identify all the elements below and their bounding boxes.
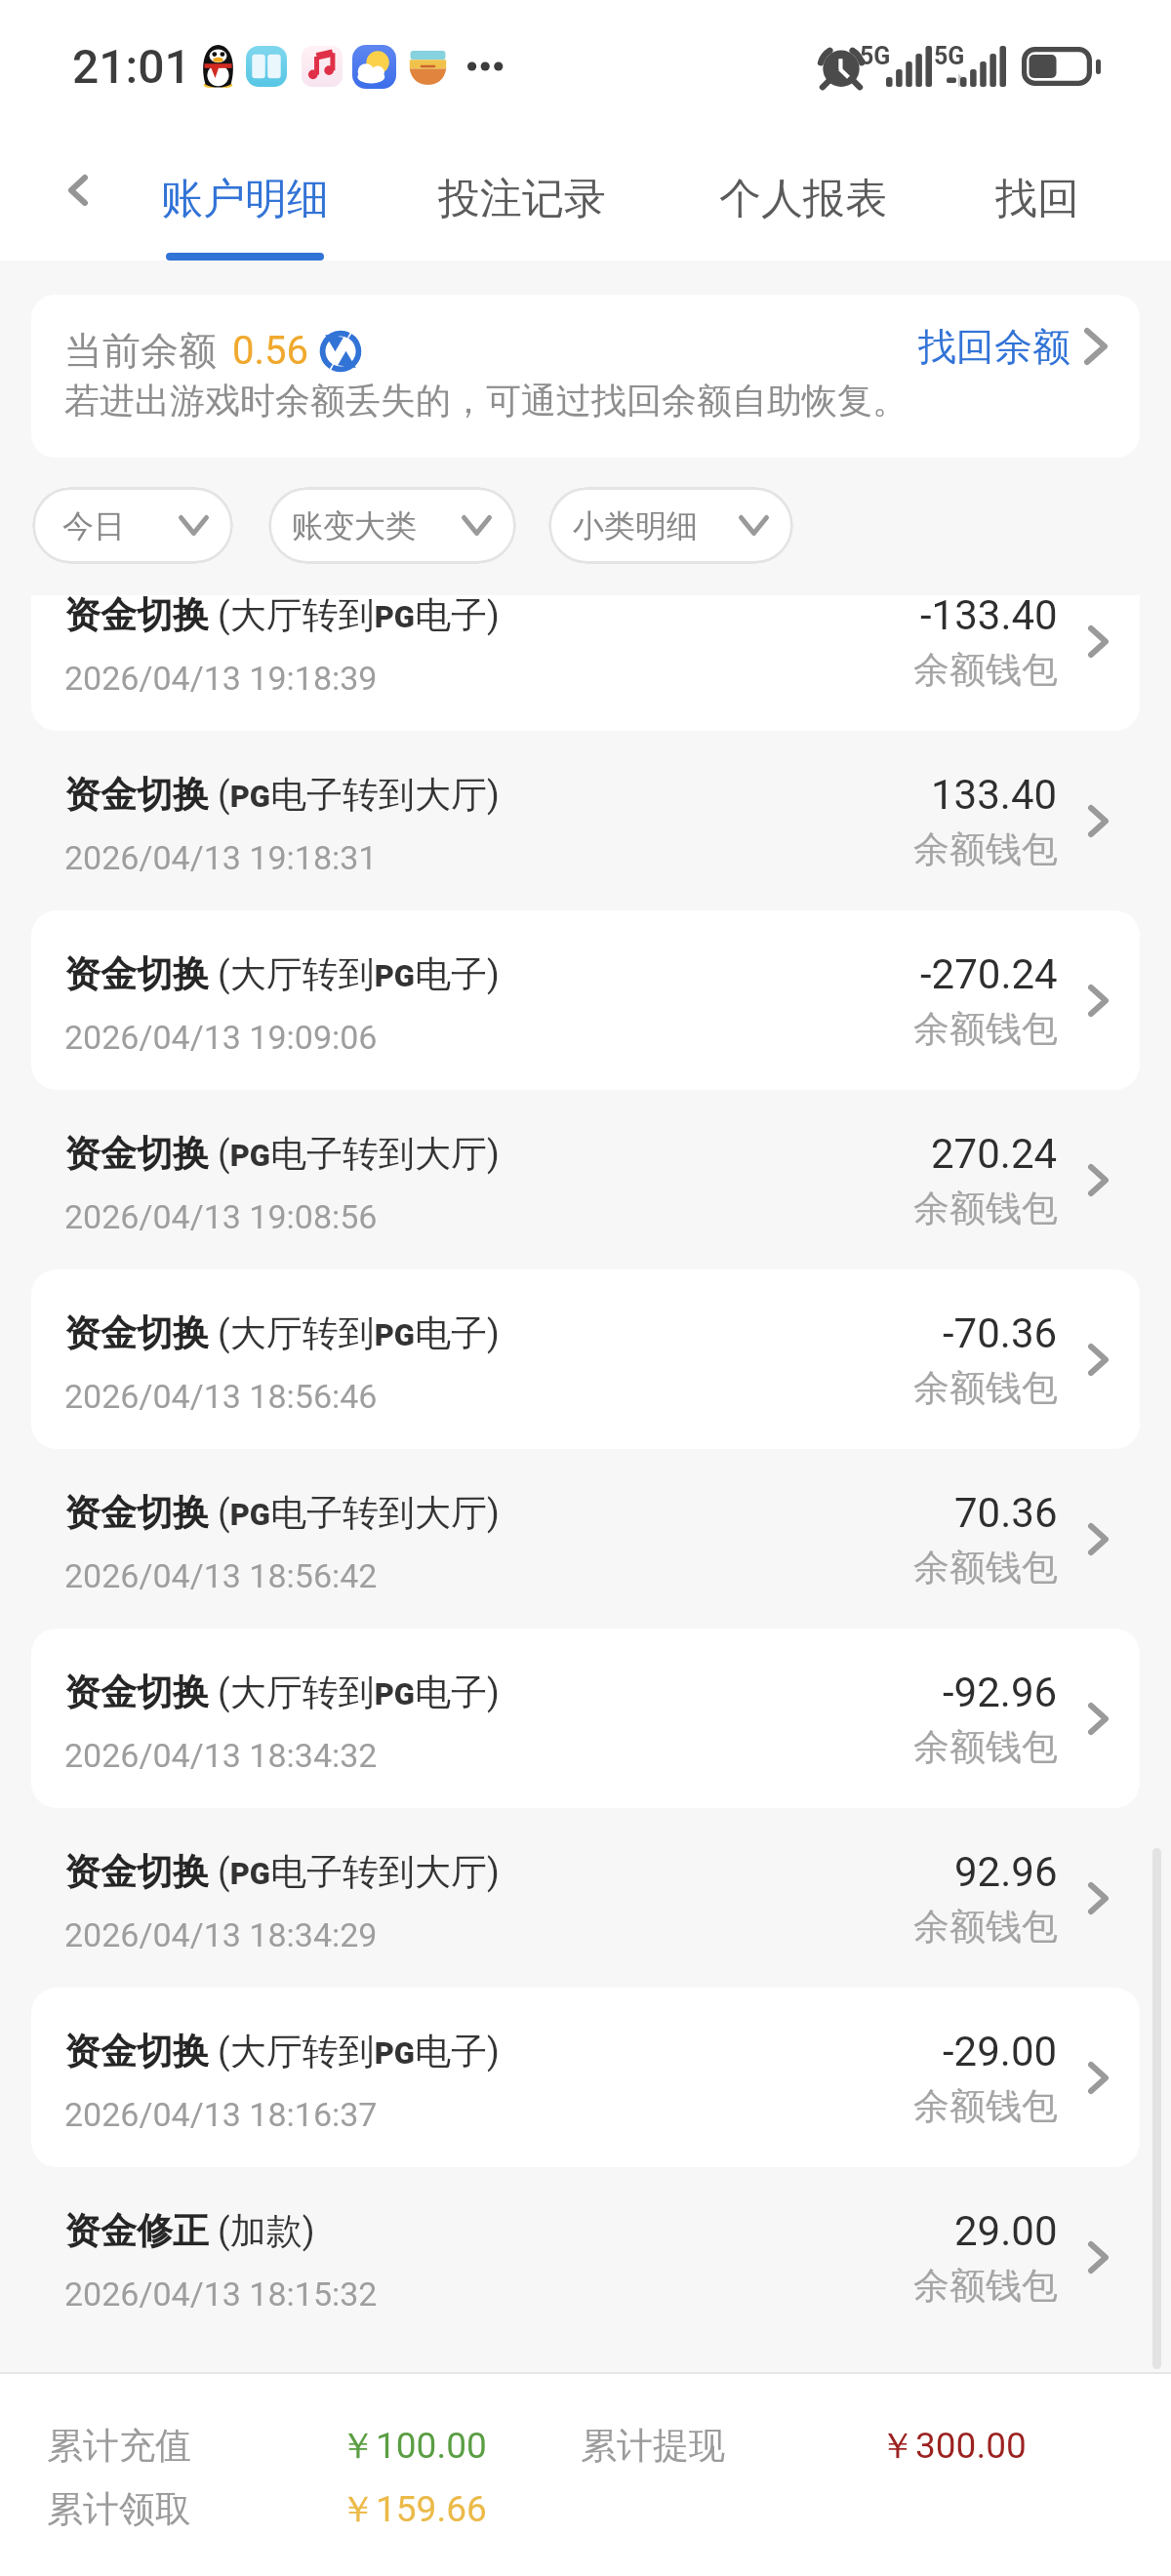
staticText: 2026/04/13 18:56:46: [64, 1377, 378, 1416]
button[interactable]: 资金切换: [0, 1629, 1171, 1808]
staticText: 今日: [62, 506, 125, 545]
staticText: ￥159.66: [340, 2486, 487, 2532]
staticText: 余额钱包: [913, 2263, 1058, 2309]
button[interactable]: 小类明细: [548, 487, 793, 564]
staticText: 当前余额: [64, 327, 217, 375]
staticText: 2026/04/13 19:18:31: [64, 838, 378, 877]
staticText: 资金切换: [64, 1670, 209, 1715]
staticText: 29.00: [954, 2207, 1058, 2255]
staticText: 小类明细: [573, 506, 698, 545]
staticText: 余额钱包: [913, 826, 1058, 872]
button[interactable]: 账变大类: [268, 487, 516, 564]
staticText: 余额钱包: [913, 1904, 1058, 1950]
button[interactable]: 账户明细: [138, 133, 352, 261]
button[interactable]: 找回: [930, 133, 1145, 261]
staticText: 70.36: [954, 1489, 1058, 1537]
button[interactable]: 资金切换: [0, 1808, 1171, 1988]
staticText: -92.96: [943, 1669, 1058, 1716]
button[interactable]: 资金切换: [0, 1449, 1171, 1629]
staticText: (大厅转到PG电子): [218, 2029, 500, 2074]
staticText: 找回余额: [918, 323, 1070, 371]
staticText: (PG电子转到大厅): [218, 772, 500, 818]
staticText: -133.40: [920, 595, 1058, 639]
staticText: (大厅转到PG电子): [218, 951, 500, 997]
staticText: 资金切换: [64, 1131, 209, 1177]
staticText: (大厅转到PG电子): [218, 595, 500, 638]
staticText: 资金切换: [64, 1490, 209, 1536]
staticText: 资金切换: [64, 1310, 209, 1356]
staticText: -70.36: [943, 1309, 1058, 1357]
button[interactable]: 投注记录: [415, 133, 629, 261]
button[interactable]: 资金切换: [0, 1269, 1171, 1449]
button[interactable]: 资金切换: [0, 1988, 1171, 2167]
staticText: (大厅转到PG电子): [218, 1310, 500, 1356]
button[interactable]: 资金切换: [0, 910, 1171, 1090]
staticText: 资金切换: [64, 951, 209, 997]
staticText: 余额钱包: [913, 1006, 1058, 1052]
staticText: 账变大类: [292, 506, 417, 545]
button[interactable]: 当前余额: [31, 295, 1140, 458]
button[interactable]: Back: [46, 158, 110, 222]
staticText: 5G: [934, 42, 965, 70]
staticText: (PG电子转到大厅): [218, 1849, 500, 1895]
staticText: 5G: [860, 42, 891, 70]
staticText: 2026/04/13 18:34:29: [64, 1915, 378, 1954]
staticText: 账户明细: [161, 173, 329, 225]
staticText: 投注记录: [438, 173, 606, 225]
staticText: 余额钱包: [913, 1724, 1058, 1770]
button[interactable]: 资金切换: [0, 731, 1171, 910]
staticText: 余额钱包: [913, 1365, 1058, 1411]
staticText: 2026/04/13 18:15:32: [64, 2274, 378, 2314]
staticText: 累计领取: [47, 2486, 191, 2532]
staticText: 余额钱包: [913, 1545, 1058, 1590]
staticText: -270.24: [920, 950, 1058, 998]
staticText: 133.40: [931, 771, 1058, 819]
staticText: 资金修正: [64, 2208, 209, 2254]
staticText: 资金切换: [64, 2029, 209, 2074]
staticText: 2026/04/13 18:34:32: [64, 1736, 378, 1775]
staticText: 资金切换: [64, 595, 209, 638]
staticText: 92.96: [954, 1848, 1058, 1896]
button[interactable]: 资金切换: [0, 1090, 1171, 1269]
staticText: 0.56: [232, 328, 308, 374]
staticText: 2026/04/13 19:18:39: [64, 659, 378, 698]
staticText: 若进出游戏时余额丢失的，可通过找回余额自助恢复。: [64, 379, 908, 423]
staticText: 270.24: [931, 1130, 1058, 1178]
staticText: -29.00: [943, 2028, 1058, 2075]
staticText: (PG电子转到大厅): [218, 1131, 500, 1177]
staticText: 2026/04/13 18:16:37: [64, 2095, 378, 2134]
staticText: (加款): [218, 2208, 315, 2254]
staticText: ￥100.00: [340, 2423, 487, 2469]
button[interactable]: 找回余额: [912, 314, 1113, 379]
button[interactable]: 个人报表: [696, 133, 910, 261]
staticText: 资金切换: [64, 1849, 209, 1895]
staticText: ￥300.00: [879, 2423, 1027, 2469]
staticText: 余额钱包: [913, 1186, 1058, 1231]
staticText: 余额钱包: [913, 647, 1058, 693]
staticText: 累计充值: [47, 2423, 191, 2469]
button[interactable]: 资金修正: [0, 2167, 1171, 2328]
button[interactable]: 今日: [32, 487, 233, 564]
button[interactable]: 资金切换: [0, 595, 1171, 731]
staticText: 个人报表: [719, 173, 887, 225]
staticText: 2026/04/13 19:09:06: [64, 1018, 378, 1057]
staticText: 21:01: [72, 39, 191, 94]
staticText: 余额钱包: [913, 2083, 1058, 2129]
staticText: 2026/04/13 18:56:42: [64, 1556, 378, 1595]
staticText: 资金切换: [64, 772, 209, 818]
staticText: (大厅转到PG电子): [218, 1670, 500, 1715]
staticText: 累计提现: [581, 2423, 725, 2469]
staticText: 2026/04/13 19:08:56: [64, 1197, 378, 1236]
staticText: (PG电子转到大厅): [218, 1490, 500, 1536]
staticText: 找回: [995, 173, 1079, 225]
